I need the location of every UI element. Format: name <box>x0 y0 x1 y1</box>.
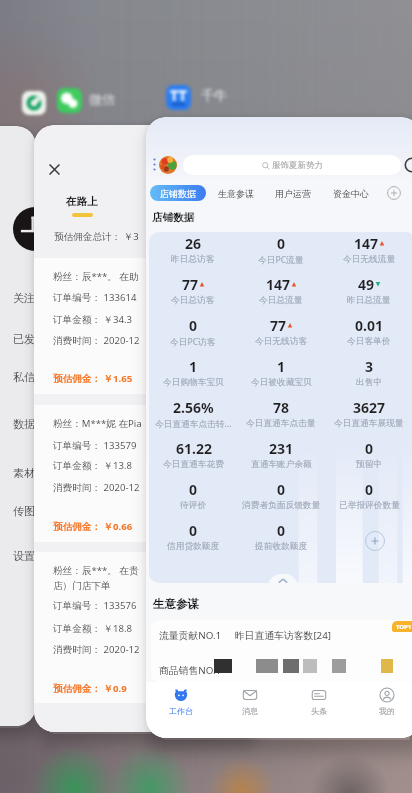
staticText: 3627 <box>353 398 386 417</box>
button[interactable]: 生意参谋 <box>215 185 257 201</box>
staticText: 待评价 <box>180 500 207 511</box>
button[interactable]: Close <box>48 163 61 176</box>
staticText: 今日PC访客 <box>170 336 216 348</box>
staticText: 147 <box>354 234 379 253</box>
button[interactable]: 26 <box>149 234 237 275</box>
staticText: 0 <box>277 480 286 499</box>
button[interactable]: 61.22 <box>149 439 237 480</box>
button[interactable]: 关注 <box>0 126 36 726</box>
staticText: 预估佣金总计： ￥3 <box>54 230 139 243</box>
button[interactable]: More options <box>146 117 412 738</box>
staticText: 生意参谋 <box>153 597 199 611</box>
button[interactable]: 头条 <box>284 682 353 732</box>
staticText: 0 <box>189 521 198 540</box>
staticText: 49 <box>358 275 375 294</box>
button[interactable]: Scan <box>404 157 412 173</box>
button[interactable]: 资金中心 <box>330 185 372 201</box>
button[interactable]: 3 <box>325 357 412 398</box>
staticText: 订单金额： ￥13.8 <box>53 459 133 472</box>
button[interactable]: 私信 <box>0 364 36 390</box>
button[interactable]: More options <box>152 158 157 171</box>
button[interactable]: 0 <box>237 480 325 521</box>
button[interactable]: 0 <box>237 521 325 562</box>
staticText: 今日直通车花费 <box>163 459 224 470</box>
button[interactable] <box>34 552 257 703</box>
staticText: 0 <box>365 480 374 499</box>
button[interactable]: 0 <box>149 521 237 562</box>
staticText: 消费时间： 2020-12 <box>53 334 140 347</box>
staticText: 预留中 <box>356 459 383 470</box>
button[interactable] <box>151 620 412 682</box>
button[interactable]: 1 <box>149 357 237 398</box>
staticText: 61.22 <box>176 439 212 458</box>
staticText: 0 <box>277 521 286 540</box>
button[interactable]: 2.56% <box>149 398 237 439</box>
button[interactable] <box>34 258 257 394</box>
button[interactable]: 1 <box>237 357 325 398</box>
staticText: 店铺数据 <box>152 211 194 224</box>
staticText: 77 <box>270 316 287 335</box>
staticText: 今日PC流量 <box>258 254 304 266</box>
button[interactable]: 49 <box>325 275 412 316</box>
staticText: 资金中心 <box>333 188 369 199</box>
button[interactable]: 78 <box>237 398 325 439</box>
staticText: 粉丝：辰***。 在助 <box>53 270 139 283</box>
staticText: 预估佣金： ￥0.66 <box>53 520 133 533</box>
button[interactable]: 147 <box>325 234 412 275</box>
staticText: 粉丝：M***妮 在Pia <box>53 417 142 430</box>
button[interactable]: 0 <box>149 316 237 357</box>
button[interactable]: Add metric <box>365 531 385 551</box>
staticText: 订单编号： 133614 <box>53 291 137 304</box>
button[interactable]: 消息 <box>215 682 284 732</box>
staticText: 0 <box>277 234 286 253</box>
button[interactable]: Profile <box>159 156 177 174</box>
button[interactable]: 0 <box>237 234 325 275</box>
button[interactable]: 店铺数据 <box>150 185 206 201</box>
staticText: 信用贷款额度 <box>167 541 220 552</box>
staticText: 消费时间： 2020-12 <box>53 643 140 656</box>
staticText: 今日直通车点击转... <box>155 418 232 430</box>
button[interactable]: 服饰夏新势力 <box>183 155 401 175</box>
staticText: 关注 <box>13 291 35 305</box>
button[interactable]: Qianniu <box>166 85 191 110</box>
staticText: 0 <box>189 316 198 335</box>
button[interactable]: 关注 <box>0 285 36 311</box>
button[interactable]: 0 <box>325 439 412 480</box>
staticText: 订单金额： ￥18.8 <box>53 622 133 635</box>
staticText: 0.01 <box>355 316 383 335</box>
staticText: 147 <box>266 275 291 294</box>
staticText: 已发 <box>13 332 35 346</box>
button[interactable]: Collapse <box>268 574 298 587</box>
button[interactable]: 传图 <box>0 498 36 524</box>
button[interactable]: 231 <box>237 439 325 480</box>
button[interactable]: Add tab <box>387 186 401 200</box>
button[interactable]: 素材 <box>0 460 36 486</box>
button[interactable]: 数据 <box>0 411 36 437</box>
button[interactable]: 3627 <box>325 398 412 439</box>
staticText: 今日客单价 <box>347 336 391 347</box>
staticText: 流量贡献NO.1 <box>159 629 222 642</box>
button[interactable]: 147 <box>237 275 325 316</box>
button[interactable]: 77 <box>149 275 237 316</box>
button[interactable]: 设置 <box>0 543 36 569</box>
button[interactable]: 0 <box>325 480 412 521</box>
staticText: 231 <box>269 439 294 458</box>
button[interactable] <box>34 405 257 542</box>
button[interactable]: Close <box>34 125 257 732</box>
button[interactable]: 0 <box>149 480 237 521</box>
button[interactable]: 我的 <box>352 682 412 732</box>
button[interactable]: 用户运营 <box>272 185 314 201</box>
staticText: 预估佣金： ￥0.9 <box>53 682 127 695</box>
button[interactable]: 已发 <box>0 326 36 352</box>
staticText: 我的 <box>379 706 395 716</box>
button[interactable]: Alipay <box>22 91 46 115</box>
button[interactable]: WeChat <box>57 88 82 113</box>
staticText: 生意参谋 <box>218 188 254 199</box>
button[interactable]: 工作台 <box>146 682 215 732</box>
staticText: 订单金额： ￥34.3 <box>53 313 133 326</box>
staticText: 店铺数据 <box>160 188 196 199</box>
button[interactable]: 77 <box>237 316 325 357</box>
staticText: 订单编号： 133579 <box>53 439 137 452</box>
button[interactable]: 0.01 <box>325 316 412 357</box>
staticText: 0 <box>189 480 198 499</box>
